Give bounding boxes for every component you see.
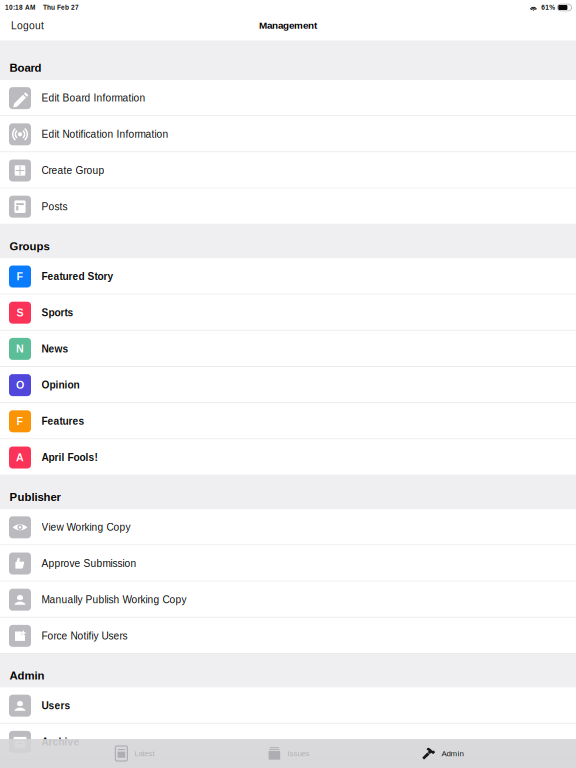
staticText: Logout — [11, 20, 44, 31]
button[interactable]: Issues — [211, 739, 365, 768]
staticText: Archive — [41, 736, 79, 747]
staticText: View Working Copy — [41, 522, 130, 533]
button[interactable]: F — [0, 403, 576, 439]
button[interactable]: Logout — [0, 19, 44, 36]
button[interactable]: Admin — [365, 739, 519, 768]
button[interactable]: Edit Notification Information — [0, 116, 576, 152]
button[interactable]: N — [0, 331, 576, 367]
button[interactable]: Latest — [57, 739, 211, 768]
button[interactable]: Posts — [0, 189, 576, 225]
button[interactable]: Approve Submission — [0, 545, 576, 582]
button[interactable]: F — [0, 258, 576, 295]
staticText: Features — [41, 416, 84, 427]
staticText: 61% — [541, 4, 555, 11]
staticText: Manually Publish Working Copy — [41, 594, 186, 605]
staticText: Users — [41, 700, 70, 711]
staticText: Management — [259, 20, 317, 31]
staticText: Featured Story — [41, 271, 113, 282]
staticText: Publisher — [9, 491, 60, 503]
button[interactable]: Manually Publish Working Copy — [0, 582, 576, 618]
staticText: S — [16, 307, 23, 319]
staticText: Latest — [135, 749, 155, 758]
staticText: Create Group — [41, 165, 104, 176]
staticText: Approve Submission — [41, 558, 136, 569]
staticText: Force Notifiy Users — [41, 630, 127, 641]
button[interactable]: Archive — [0, 724, 576, 760]
staticText: April Fools! — [41, 452, 97, 463]
staticText: Edit Notification Information — [41, 129, 168, 140]
button[interactable]: A — [0, 439, 576, 476]
button[interactable]: Users — [0, 688, 576, 724]
staticText: F — [16, 270, 23, 282]
staticText: N — [16, 343, 24, 355]
staticText: News — [41, 343, 68, 354]
staticText: Groups — [9, 240, 49, 253]
staticText: O — [16, 379, 24, 391]
staticText: Board — [9, 61, 41, 74]
button[interactable]: Edit Board Information — [0, 80, 576, 116]
button[interactable]: Force Notifiy Users — [0, 618, 576, 654]
staticText: Thu Feb 27 — [43, 4, 79, 11]
staticText: 10:18 AM — [5, 4, 35, 11]
button[interactable]: Create Group — [0, 152, 576, 189]
staticText: Sports — [41, 307, 73, 318]
button[interactable]: O — [0, 367, 576, 403]
staticText: Admin — [9, 669, 44, 682]
staticText: Issues — [288, 749, 310, 758]
button[interactable]: S — [0, 295, 576, 331]
staticText: Admin — [442, 749, 464, 758]
staticText: Edit Board Information — [41, 92, 145, 104]
staticText: Opinion — [41, 379, 79, 391]
staticText: Posts — [41, 201, 67, 212]
button[interactable]: View Working Copy — [0, 509, 576, 545]
staticText: F — [16, 415, 23, 427]
staticText: A — [16, 451, 24, 463]
